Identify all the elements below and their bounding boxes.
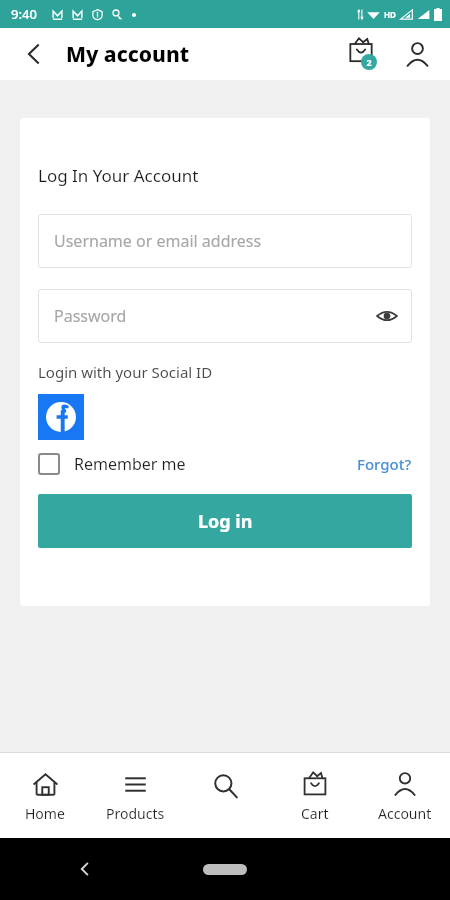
- button[interactable]: Home: [0, 753, 90, 838]
- button[interactable]: Log in: [38, 494, 412, 548]
- staticText: Password: [54, 305, 127, 327]
- button[interactable]: Back: [14, 34, 54, 74]
- staticText: My account: [66, 40, 190, 69]
- staticText: Forgot?: [357, 454, 412, 474]
- button[interactable]: Products: [90, 753, 180, 838]
- staticText: Cart: [301, 804, 329, 823]
- staticText: HD: [384, 9, 396, 20]
- button[interactable]: Log in with Facebook: [38, 394, 84, 440]
- button[interactable]: Cart: [270, 753, 360, 838]
- staticText: Products: [106, 804, 165, 823]
- button[interactable]: Back: [70, 854, 100, 884]
- button[interactable]: Show password: [370, 299, 404, 333]
- staticText: Account: [378, 804, 432, 823]
- staticText: Login with your Social ID: [38, 362, 213, 382]
- button[interactable]: Home: [203, 864, 247, 875]
- button[interactable]: Password: [38, 289, 412, 343]
- staticText: Log in: [198, 509, 253, 534]
- button[interactable]: Username or email address: [38, 214, 412, 268]
- button[interactable]: Forgot?: [357, 454, 412, 474]
- button[interactable]: Cart, 2 items: [342, 35, 380, 73]
- button[interactable]: Account: [360, 753, 450, 838]
- button[interactable]: Account: [398, 35, 436, 73]
- staticText: Remember me: [74, 453, 186, 475]
- staticText: 2: [366, 56, 372, 68]
- staticText: Home: [25, 804, 65, 823]
- staticText: 9:40: [11, 5, 37, 23]
- button[interactable]: Search: [180, 753, 270, 838]
- staticText: Log In Your Account: [38, 164, 199, 187]
- staticText: Username or email address: [54, 230, 262, 252]
- button[interactable]: Remember me: [38, 453, 186, 475]
